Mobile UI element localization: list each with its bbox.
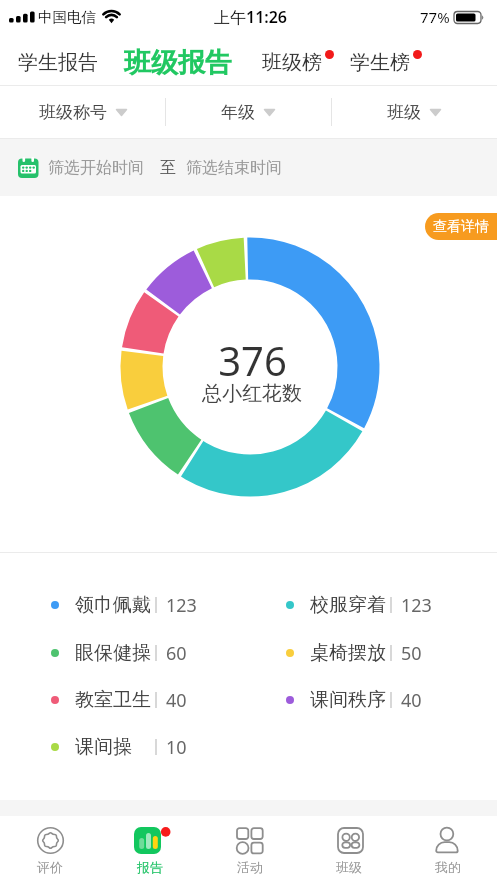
staticText: 376 (218, 333, 287, 381)
staticText: 班级称号 (39, 102, 107, 123)
staticText: 课间操 (75, 735, 132, 758)
button[interactable]: 班级榜 (262, 50, 322, 75)
staticText: 40 (401, 688, 422, 711)
staticText: 中国电信 (38, 8, 96, 26)
staticText: 上午11:26 (214, 6, 288, 28)
staticText: 眼保健操 (75, 641, 151, 664)
staticText: 班级 (387, 102, 421, 123)
staticText: 总小红花数 (202, 381, 302, 406)
staticText: 查看详情 (433, 218, 489, 236)
staticText: 领巾佩戴 (75, 593, 151, 616)
staticText: 年级 (221, 102, 255, 123)
staticText: 123 (166, 593, 197, 616)
staticText: 桌椅摆放 (310, 641, 386, 664)
staticText: 123 (401, 593, 432, 616)
button[interactable]: 评价 (0, 816, 100, 883)
staticText: 教室卫生 (75, 688, 151, 711)
button[interactable]: 报告 (100, 816, 200, 883)
button[interactable]: 学生报告 (18, 50, 98, 75)
staticText: 筛选结束时间 (186, 158, 282, 178)
button[interactable]: 筛选开始时间 (0, 139, 497, 196)
button[interactable]: 班级报告 (124, 46, 232, 80)
staticText: 报告 (137, 859, 163, 875)
button[interactable]: 班级 (299, 816, 398, 883)
staticText: 60 (166, 641, 187, 664)
staticText: 40 (166, 688, 187, 711)
staticText: 10 (166, 735, 187, 758)
button[interactable]: 年级 (165, 86, 331, 138)
button[interactable]: 班级 (331, 86, 497, 138)
staticText: 50 (401, 641, 422, 664)
button[interactable]: 活动 (200, 816, 299, 883)
button[interactable]: 学生榜 (350, 50, 410, 75)
staticText: 我的 (435, 859, 461, 875)
staticText: 课间秩序 (310, 688, 386, 711)
staticText: 活动 (237, 859, 263, 875)
staticText: 筛选开始时间 (48, 158, 144, 178)
staticText: 班级 (336, 859, 362, 875)
staticText: 77% (420, 7, 450, 27)
button[interactable]: 查看详情 (425, 213, 497, 240)
staticText: 至 (160, 158, 176, 178)
staticText: 校服穿着 (310, 593, 386, 616)
button[interactable]: 班级称号 (0, 86, 165, 138)
button[interactable]: 我的 (398, 816, 497, 883)
staticText: 评价 (37, 859, 63, 875)
